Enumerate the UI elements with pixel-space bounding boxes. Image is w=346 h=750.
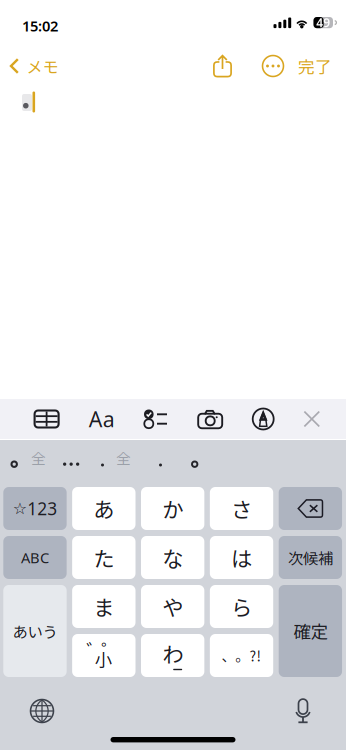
button[interactable]: Markup <box>241 399 285 439</box>
staticText: わ <box>162 638 183 669</box>
staticText: 小 <box>95 647 112 672</box>
button[interactable]: か <box>141 487 204 530</box>
button[interactable]: ら <box>210 585 273 628</box>
staticText: ☆ <box>13 499 27 518</box>
staticText: た <box>93 542 114 573</box>
staticText: Aa <box>89 405 115 433</box>
staticText: な <box>162 542 183 573</box>
staticText: 次候補 <box>288 546 333 569</box>
button[interactable]: 完了 <box>291 45 339 87</box>
button[interactable]: Hide keyboard <box>290 399 334 439</box>
button[interactable]: わ <box>141 634 204 677</box>
staticText: や <box>162 591 183 622</box>
staticText: ゛ <box>86 636 105 663</box>
button[interactable]: あいう <box>3 585 67 677</box>
button[interactable]: ABC <box>3 536 67 579</box>
button[interactable]: は <box>210 536 273 579</box>
staticText: 49 <box>316 15 330 30</box>
staticText: 全 <box>31 447 46 468</box>
button[interactable]: メモ <box>0 45 66 87</box>
button[interactable]: Switch keyboard <box>20 694 64 728</box>
staticText: 全 <box>116 447 131 468</box>
staticText: 123 <box>27 497 57 520</box>
button[interactable]: ☆ <box>3 487 67 530</box>
staticText: あ <box>93 493 114 524</box>
button[interactable]: Format <box>80 399 124 439</box>
staticText: 15:02 <box>22 16 58 35</box>
button[interactable]: More <box>255 45 291 87</box>
button[interactable]: Dictation <box>281 694 325 728</box>
button[interactable]: Camera <box>188 399 232 439</box>
staticText: ら <box>231 591 252 622</box>
button[interactable]: な <box>141 536 204 579</box>
staticText: ゜ <box>101 636 120 663</box>
button[interactable]: Checklist <box>133 399 177 439</box>
staticText: ま <box>93 591 114 622</box>
staticText: あいう <box>12 620 57 642</box>
button[interactable]: た <box>72 536 135 579</box>
button[interactable]: Share <box>203 45 241 87</box>
button[interactable]: Table <box>25 399 69 439</box>
button[interactable]: ま <box>72 585 135 628</box>
button[interactable]: 次候補 <box>279 536 342 579</box>
button[interactable] <box>279 487 342 530</box>
button[interactable]: ゛ <box>72 634 135 677</box>
staticText: ABC <box>21 548 49 567</box>
button[interactable]: や <box>141 585 204 628</box>
staticText: 、。?! <box>221 645 261 666</box>
button[interactable]: 、。?! <box>210 634 273 677</box>
button[interactable]: あ <box>72 487 135 530</box>
staticText: メモ <box>26 54 58 78</box>
staticText: か <box>162 493 183 524</box>
button[interactable]: さ <box>210 487 273 530</box>
staticText: さ <box>231 493 252 524</box>
staticText: 完了 <box>298 54 332 78</box>
button[interactable]: 確定 <box>279 585 342 677</box>
staticText: は <box>231 542 252 573</box>
staticText: 確定 <box>293 618 327 644</box>
